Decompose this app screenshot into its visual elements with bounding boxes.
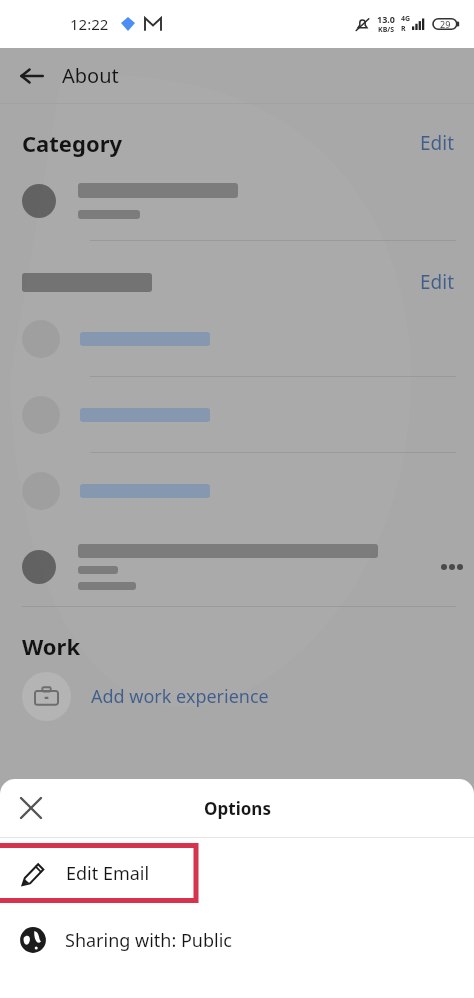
staticText: Sharing with: Public xyxy=(65,928,232,953)
button[interactable]: Edit xyxy=(401,124,474,162)
staticText: Category xyxy=(22,128,123,158)
button[interactable]: Edit xyxy=(401,263,474,301)
button[interactable]: Edit Email xyxy=(0,838,474,908)
button[interactable] xyxy=(0,453,474,528)
button[interactable]: Close xyxy=(10,787,52,829)
button[interactable]: More options xyxy=(0,528,474,606)
button[interactable]: Back xyxy=(12,56,52,96)
staticText: Edit xyxy=(420,269,455,295)
button[interactable] xyxy=(0,162,474,240)
staticText: Edit xyxy=(420,130,455,156)
button[interactable] xyxy=(0,377,474,452)
staticText: Work xyxy=(22,631,81,661)
staticText: 13.0 xyxy=(377,13,395,25)
button[interactable]: Add work experience xyxy=(0,665,474,727)
staticText: About xyxy=(62,62,119,89)
staticText: Edit Email xyxy=(66,861,150,886)
staticText: Add work experience xyxy=(91,684,269,709)
button[interactable]: Sharing with: Public xyxy=(0,908,474,972)
staticText: R xyxy=(401,24,406,34)
staticText: 12:22 xyxy=(70,14,109,34)
staticText: 4G xyxy=(401,14,411,24)
button[interactable]: More options xyxy=(430,545,474,589)
button[interactable] xyxy=(0,301,474,376)
staticText: 29 xyxy=(440,18,451,30)
staticText: Options xyxy=(204,797,271,820)
staticText: KB/S xyxy=(378,25,395,35)
